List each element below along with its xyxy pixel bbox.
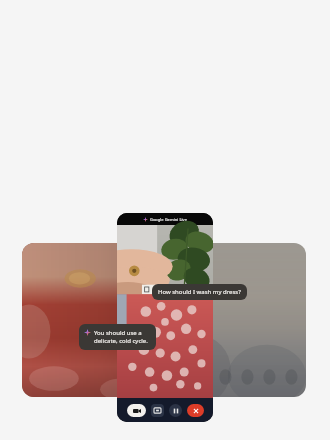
- button[interactable]: Switch camera: [127, 404, 146, 417]
- button[interactable]: You should use a delicate, cold cycle.: [79, 324, 156, 350]
- staticText: Google Gemini Live: [150, 217, 188, 222]
- button[interactable]: Share screen: [151, 404, 164, 417]
- staticText: You should use a delicate, cold cycle.: [94, 329, 148, 345]
- staticText: How should I wash my dress?: [158, 288, 241, 296]
- button[interactable]: How should I wash my dress?: [152, 284, 247, 300]
- button[interactable]: Pause: [169, 404, 182, 417]
- button[interactable]: End session: [187, 404, 204, 417]
